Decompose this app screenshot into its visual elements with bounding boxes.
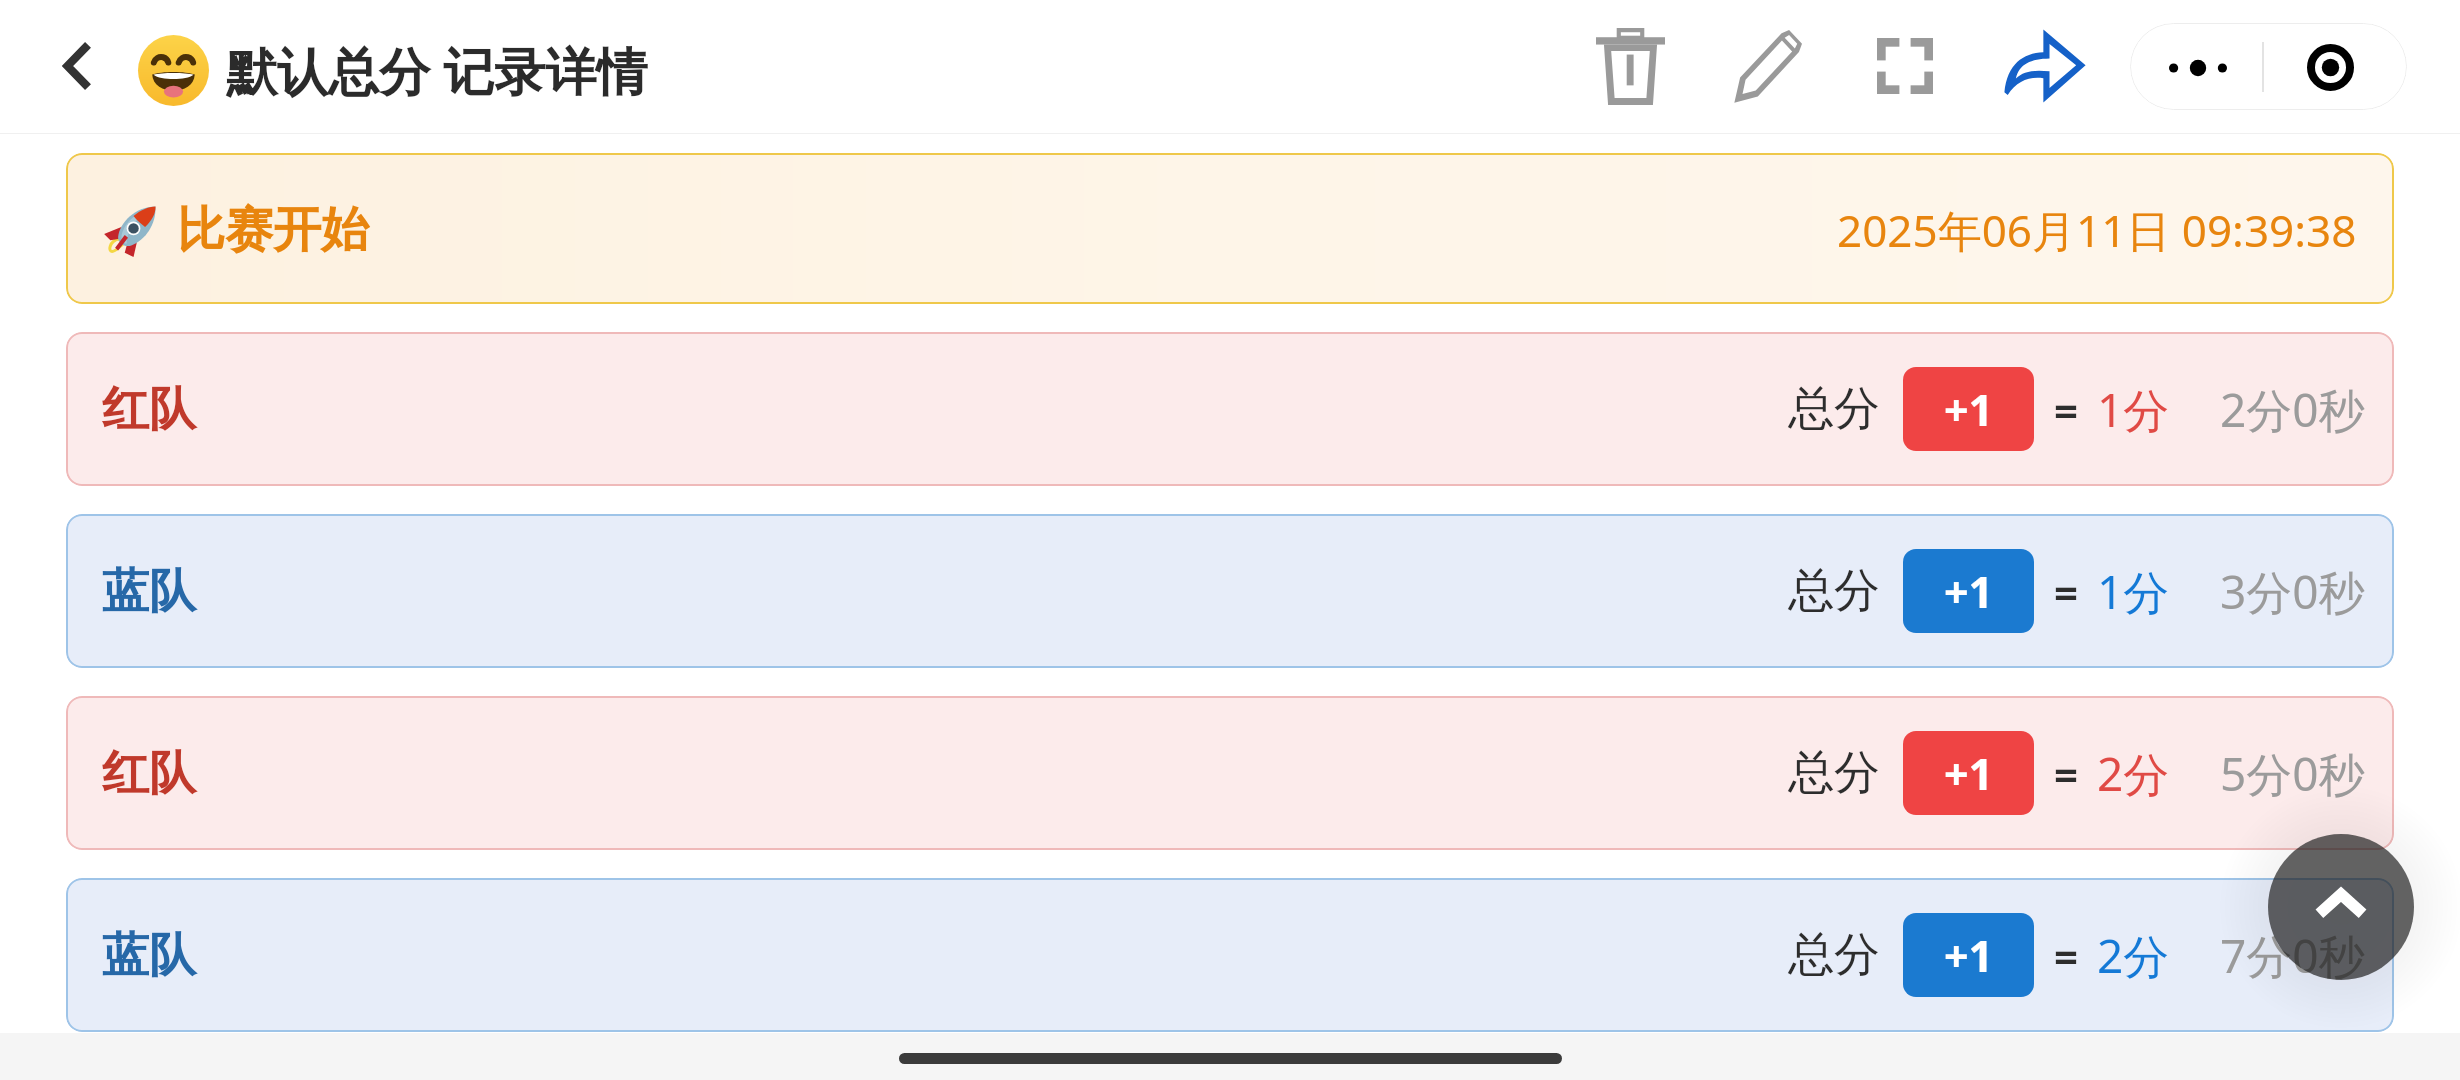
button[interactable]: 比赛开始 (66, 153, 2394, 304)
button[interactable]: 红队 (66, 696, 2394, 850)
staticText: 默认总分 记录详情 (226, 35, 648, 105)
staticText: +1 (1944, 926, 1994, 985)
staticText: 红队 (102, 380, 196, 439)
staticText: 总分 (1788, 562, 1880, 620)
staticText: 总分 (1788, 380, 1880, 438)
staticText: = (2054, 563, 2079, 620)
staticText: = (2054, 927, 2079, 984)
staticText: 1分 (2097, 378, 2170, 441)
button[interactable]: 蓝队 (66, 878, 2394, 1032)
button[interactable]: 蓝队 (66, 514, 2394, 668)
staticText: 2025年06月11日 09:39:38 (1837, 200, 2357, 260)
staticText: 总分 (1788, 744, 1880, 802)
button[interactable]: Scroll to top (2268, 834, 2414, 980)
staticText: 2分 (2097, 742, 2170, 805)
button[interactable]: 红队 (66, 332, 2394, 486)
staticText: +1 (1944, 562, 1994, 621)
staticText: 蓝队 (102, 562, 196, 621)
staticText: 2分 (2097, 924, 2170, 987)
staticText: 7分0秒 (2220, 924, 2365, 987)
staticText: 1分 (2097, 560, 2170, 623)
button[interactable]: Delete (1570, 6, 1690, 126)
staticText: 2分0秒 (2220, 378, 2365, 441)
staticText: 红队 (102, 744, 196, 803)
staticText: +1 (1944, 380, 1994, 439)
staticText: 3分0秒 (2220, 560, 2365, 623)
button[interactable]: Edit (1708, 6, 1828, 126)
button[interactable]: Mini program menu (2302, 39, 2358, 95)
staticText: 5分0秒 (2220, 742, 2365, 805)
staticText: = (2054, 381, 2079, 438)
button[interactable]: Fullscreen (1845, 6, 1965, 126)
button[interactable]: More (2155, 23, 2241, 110)
staticText: = (2054, 745, 2079, 802)
staticText: +1 (1944, 744, 1994, 803)
button[interactable]: Back (37, 8, 117, 124)
staticText: 蓝队 (102, 926, 196, 985)
button[interactable]: Share (1985, 6, 2105, 126)
staticText: 比赛开始 (177, 200, 369, 260)
staticText: 总分 (1788, 926, 1880, 984)
